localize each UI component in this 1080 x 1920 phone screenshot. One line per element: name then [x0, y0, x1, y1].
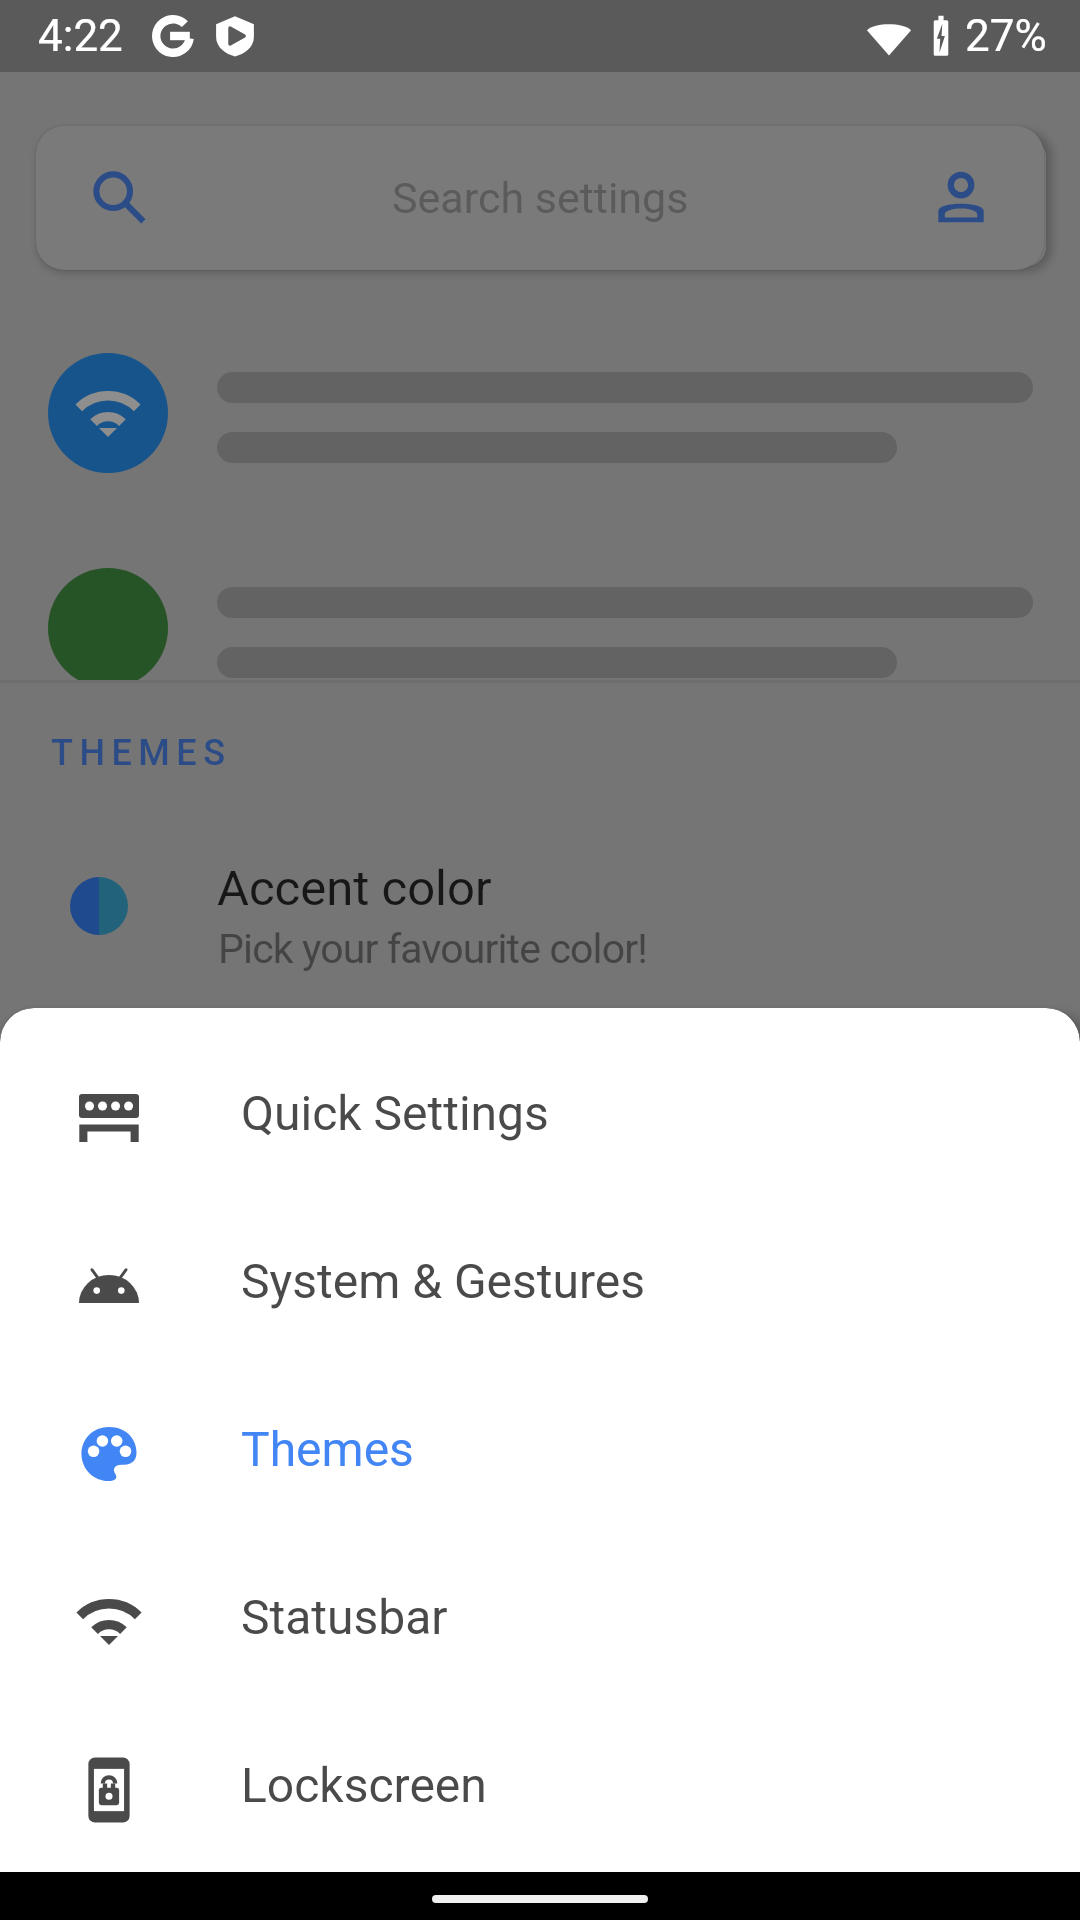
- button[interactable]: Network & internet: [0, 290, 1080, 505]
- staticText: Themes: [241, 1421, 414, 1477]
- staticText: Pick your favourite color!: [218, 925, 647, 973]
- staticText: Lockscreen: [241, 1757, 487, 1813]
- button[interactable]: Lockscreen: [0, 1701, 1080, 1869]
- button[interactable]: Statusbar: [0, 1533, 1080, 1701]
- button[interactable]: Quick Settings: [0, 1029, 1080, 1197]
- button[interactable]: Search settings: [36, 126, 1044, 270]
- button[interactable]: System & Gestures: [0, 1197, 1080, 1365]
- staticText: 27%: [965, 10, 1047, 62]
- button[interactable]: Connected devices: [0, 505, 1080, 680]
- staticText: THEMES: [51, 732, 232, 774]
- staticText: 4:22: [38, 10, 123, 62]
- staticText: Search settings: [392, 173, 689, 223]
- staticText: Quick Settings: [241, 1085, 549, 1141]
- button[interactable]: Themes: [0, 1365, 1080, 1533]
- staticText: Accent color: [217, 860, 492, 917]
- button[interactable]: Account: [916, 153, 1006, 243]
- staticText: Statusbar: [241, 1589, 448, 1645]
- button[interactable]: Accent color: [0, 800, 1080, 1008]
- staticText: System & Gestures: [241, 1253, 646, 1309]
